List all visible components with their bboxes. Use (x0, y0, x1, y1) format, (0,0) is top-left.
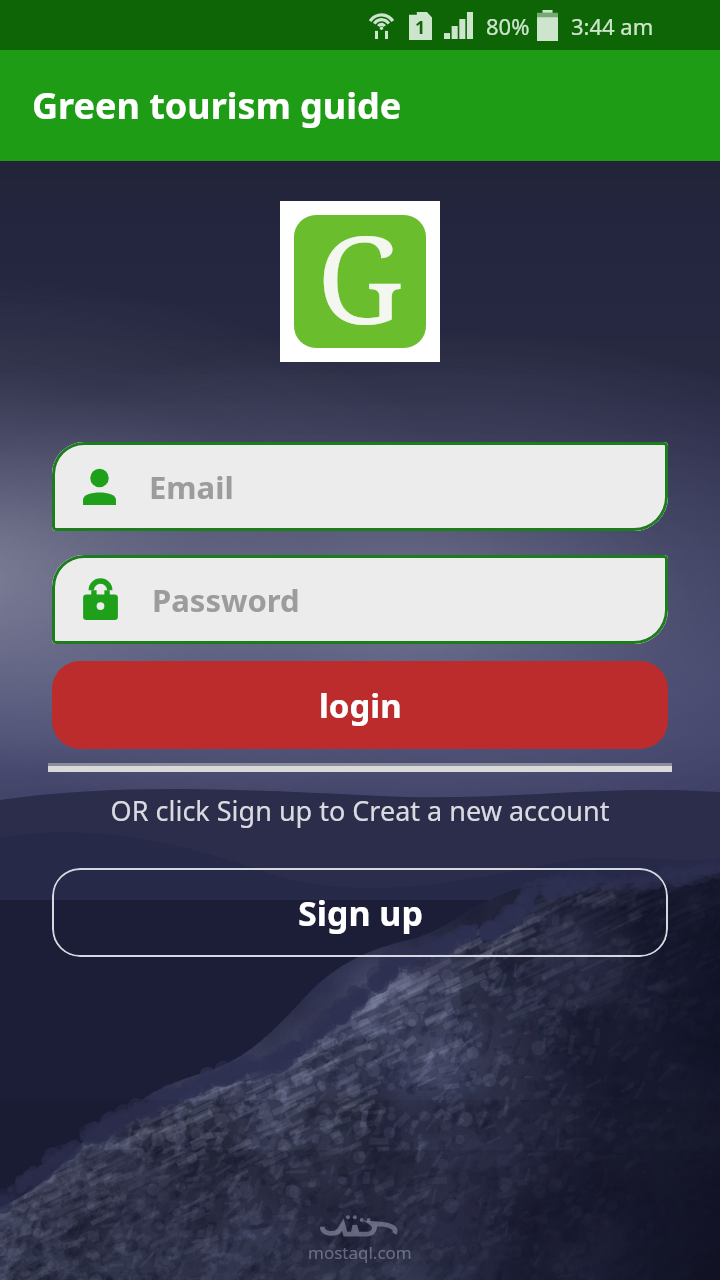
staticText: Green tourism guide (32, 81, 402, 130)
staticText: Email (149, 466, 234, 508)
staticText: 1 (415, 15, 426, 40)
staticText: G (317, 215, 403, 329)
staticText: 3:44 am (571, 11, 654, 41)
button[interactable]: Password (52, 555, 668, 644)
staticText: 80% (486, 11, 530, 41)
staticText: mostaql.com (308, 1241, 412, 1264)
staticText: Sign up (298, 890, 423, 936)
staticText: Password (152, 579, 300, 621)
button[interactable]: Email (52, 442, 668, 531)
button[interactable]: login (52, 661, 668, 749)
staticText: login (319, 683, 402, 728)
button[interactable]: Sign up (52, 868, 668, 957)
staticText: OR click Sign up to Creat a new account (0, 792, 720, 829)
